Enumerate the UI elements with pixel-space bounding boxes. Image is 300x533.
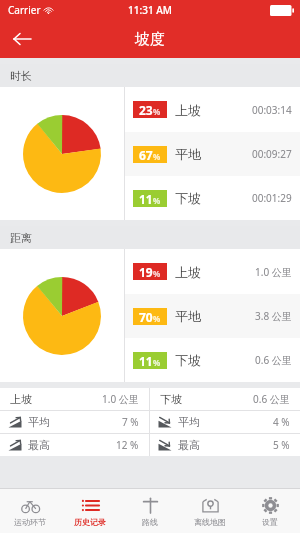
button[interactable]: 23 [125, 87, 300, 132]
staticText: 历史记录 [74, 517, 106, 527]
staticText: 19 [139, 264, 153, 280]
button[interactable]: 70 [125, 294, 300, 338]
staticText: % [153, 195, 161, 206]
staticText: 设置 [262, 517, 278, 527]
staticText: Carrier [8, 3, 41, 17]
staticText: 5 % [273, 438, 290, 452]
staticText: 4 % [273, 415, 290, 429]
staticText: 1.0 公里 [102, 392, 139, 406]
staticText: 0.6 公里 [253, 392, 290, 406]
staticText: 下坡 [160, 392, 182, 406]
staticText: 1.0 公里 [255, 265, 292, 279]
staticText: 最高 [178, 438, 200, 452]
staticText: 7 % [122, 415, 139, 429]
staticText: 70 [139, 309, 153, 325]
staticText: 平均 [178, 415, 200, 429]
staticText: 最高 [28, 438, 50, 452]
staticText: 下坡 [175, 352, 201, 368]
staticText: 11 [139, 353, 153, 369]
button[interactable]: 67 [125, 132, 300, 176]
staticText: 23 [139, 102, 153, 118]
staticText: 12 % [116, 438, 139, 452]
staticText: 运动环节 [14, 517, 46, 527]
button[interactable]: 19 [125, 249, 300, 294]
staticText: 坡度 [135, 30, 165, 49]
staticText: 00:09:27 [252, 147, 292, 161]
button[interactable]: 路线 [120, 489, 180, 533]
staticText: % [153, 313, 161, 324]
button[interactable]: 设置 [240, 489, 300, 533]
button[interactable]: 11 [125, 176, 300, 220]
staticText: 上坡 [10, 392, 32, 406]
staticText: 11 [139, 191, 153, 207]
staticText: % [153, 151, 161, 162]
staticText: 上坡 [175, 264, 201, 280]
staticText: 67 [139, 147, 153, 163]
staticText: 3.8 公里 [255, 309, 292, 323]
staticText: 平地 [175, 308, 201, 324]
staticText: % [153, 357, 161, 368]
staticText: 00:03:14 [252, 103, 292, 117]
staticText: 时长 [10, 69, 32, 83]
staticText: 路线 [142, 517, 158, 527]
button[interactable]: Back [0, 20, 44, 58]
staticText: 下坡 [175, 190, 201, 206]
staticText: 平地 [175, 146, 201, 162]
button[interactable]: 离线地图 [180, 489, 240, 533]
staticText: % [153, 106, 161, 117]
staticText: 离线地图 [194, 517, 226, 527]
staticText: 11:31 AM [128, 3, 172, 17]
button[interactable]: 历史记录 [60, 489, 120, 533]
button[interactable]: 运动环节 [0, 489, 60, 533]
staticText: 平均 [28, 415, 50, 429]
button[interactable]: 11 [125, 338, 300, 382]
staticText: % [153, 268, 161, 279]
staticText: 00:01:29 [252, 191, 292, 205]
staticText: 0.6 公里 [255, 353, 292, 367]
staticText: 上坡 [175, 102, 201, 118]
staticText: 距离 [10, 231, 32, 245]
